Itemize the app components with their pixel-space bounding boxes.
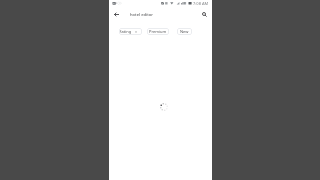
staticText: Premium <box>149 29 167 34</box>
staticText: hotel editor <box>130 12 153 18</box>
staticText: Rating <box>119 29 132 34</box>
button[interactable]: Rating <box>119 28 142 35</box>
staticText: 7:08 AM <box>193 1 209 6</box>
staticText: New <box>180 29 189 34</box>
other: Loading <box>158 101 170 113</box>
button[interactable]: Premium <box>147 28 169 35</box>
button[interactable]: Search <box>199 9 209 19</box>
button[interactable]: New <box>177 28 192 35</box>
button[interactable]: Back <box>111 9 121 19</box>
